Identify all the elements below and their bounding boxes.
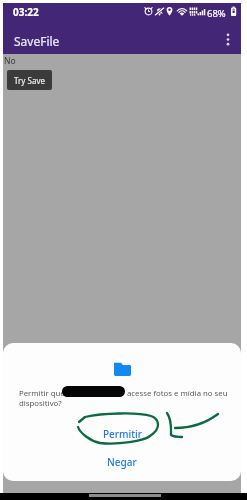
staticText: 68% [207,7,226,20]
staticText: SaveFile [14,33,60,49]
staticText: Permitir [103,427,142,441]
button[interactable]: Try Save [7,70,52,90]
button[interactable]: Negar [91,452,153,472]
button[interactable]: More options [215,26,241,52]
staticText: No [4,55,16,67]
button[interactable]: Permitir [87,424,158,444]
staticText: acesse fotos e mídia no seu [127,388,228,399]
staticText: Try Save [14,75,45,86]
staticText: dispositivo? [19,398,62,409]
staticText: 03:22 [13,5,39,19]
staticText: Negar [107,455,137,469]
staticText: Permitir que [19,388,65,399]
